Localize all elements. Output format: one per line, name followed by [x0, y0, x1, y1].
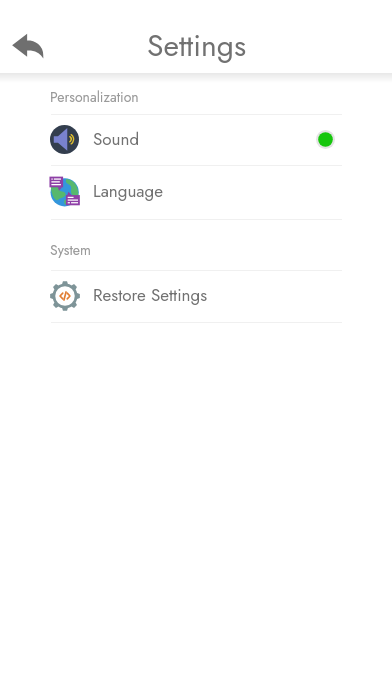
- staticText: Sound: [93, 127, 140, 152]
- button[interactable]: Restore Settings: [0, 271, 392, 322]
- staticText: System: [50, 240, 91, 260]
- button[interactable]: Back: [3, 21, 51, 69]
- staticText: Personalization: [50, 87, 139, 107]
- button[interactable]: Sound: [0, 115, 392, 165]
- button[interactable]: Language: [0, 166, 392, 219]
- staticText: Restore Settings: [93, 283, 208, 308]
- staticText: Settings: [147, 24, 247, 67]
- staticText: Language: [93, 179, 163, 204]
